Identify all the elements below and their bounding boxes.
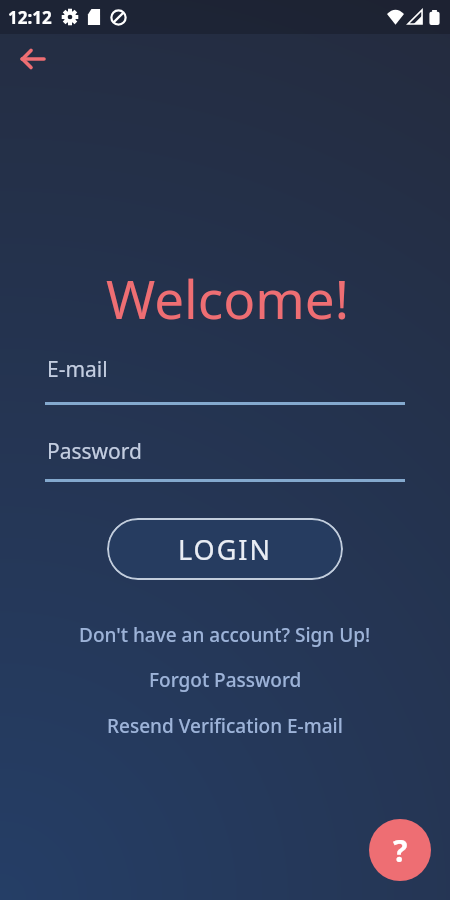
staticText: Welcome! (106, 262, 350, 334)
staticText: 12:12 (8, 6, 52, 29)
button[interactable]: ? (369, 819, 431, 881)
button[interactable] (10, 36, 56, 82)
button[interactable]: Forgot Password (149, 667, 302, 693)
staticText: E-mail (47, 355, 108, 384)
staticText: Password (47, 437, 142, 466)
button[interactable]: Resend Verification E-mail (107, 713, 343, 739)
staticText: LOGIN (178, 531, 273, 568)
button[interactable]: LOGIN (107, 518, 343, 580)
staticText: ? (393, 830, 408, 871)
button[interactable]: Don't have an account? Sign Up! (79, 622, 371, 648)
